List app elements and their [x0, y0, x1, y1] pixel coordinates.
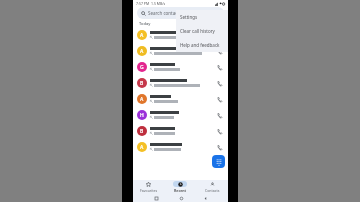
- staticText: B: [140, 80, 144, 87]
- staticText: A: [140, 32, 144, 39]
- button[interactable]: B: [133, 75, 228, 91]
- staticText: A: [140, 48, 144, 55]
- button[interactable]: Search contacts: [137, 7, 224, 19]
- button[interactable]: Call back: [215, 111, 224, 120]
- button[interactable]: Recent apps: [154, 196, 158, 200]
- button[interactable]: A: [133, 139, 228, 155]
- button[interactable]: Back: [203, 196, 207, 200]
- button[interactable]: Favourites: [133, 180, 164, 194]
- button[interactable]: B: [133, 123, 228, 139]
- staticText: 7:57 PM 1.5 MB/s: [136, 1, 166, 6]
- button[interactable]: Settings: [176, 10, 228, 24]
- button[interactable]: Help and feedback: [176, 38, 228, 52]
- button[interactable]: Clear call history: [176, 24, 228, 38]
- button[interactable]: Call back: [215, 79, 224, 88]
- button[interactable]: A: [133, 27, 228, 43]
- staticText: A: [140, 144, 144, 151]
- staticText: B: [140, 128, 144, 135]
- button[interactable]: A: [133, 91, 228, 107]
- button[interactable]: Call back: [215, 63, 224, 72]
- staticText: Recent: [174, 188, 187, 193]
- button[interactable]: Call back: [215, 127, 224, 136]
- button[interactable]: G: [133, 59, 228, 75]
- button[interactable]: Contacts: [196, 180, 228, 194]
- staticText: Settings: [180, 14, 198, 20]
- button[interactable]: Call back: [215, 143, 224, 152]
- staticText: Favourites: [140, 188, 158, 193]
- staticText: Contacts: [205, 188, 220, 193]
- button[interactable]: Recent: [164, 180, 196, 194]
- button[interactable]: A: [133, 43, 228, 59]
- staticText: A: [140, 96, 144, 103]
- staticText: Help and feedback: [180, 42, 220, 48]
- button[interactable]: Open dial pad: [212, 155, 225, 168]
- staticText: Search contacts: [148, 10, 182, 16]
- staticText: Clear call history: [180, 28, 215, 34]
- button[interactable]: Home: [179, 196, 183, 200]
- button[interactable]: H: [133, 107, 228, 123]
- staticText: Today: [139, 21, 151, 26]
- staticText: G: [140, 64, 144, 71]
- button[interactable]: Call back: [215, 95, 224, 104]
- button[interactable]: Call back: [215, 47, 224, 56]
- staticText: H: [140, 112, 144, 119]
